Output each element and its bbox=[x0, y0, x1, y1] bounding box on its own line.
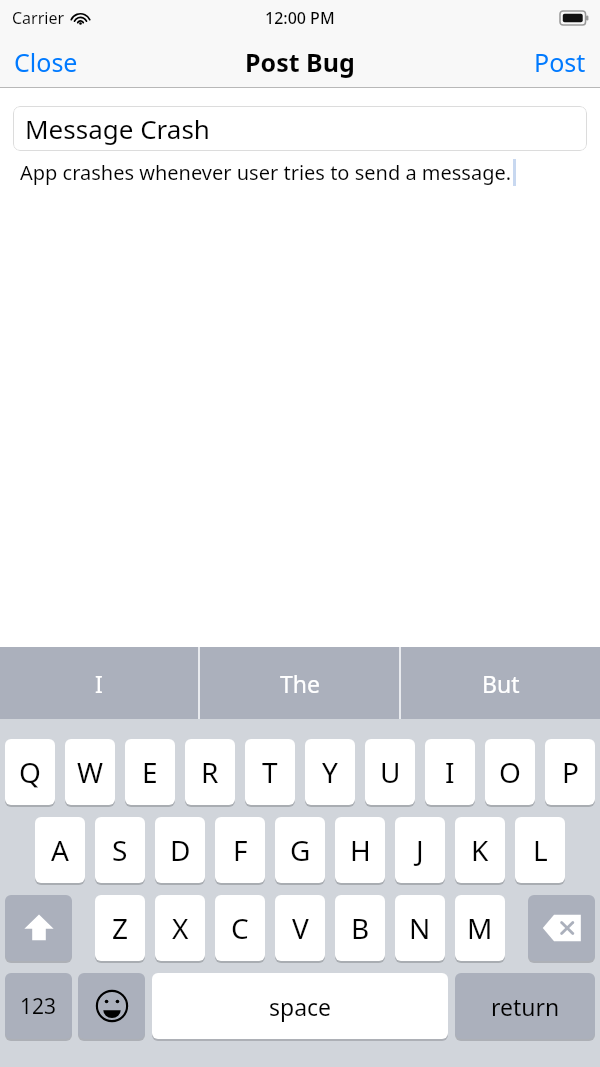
staticText: I bbox=[95, 668, 103, 699]
staticText: A bbox=[51, 831, 69, 869]
button[interactable]: O bbox=[485, 739, 535, 805]
button[interactable]: 123 bbox=[5, 973, 72, 1039]
staticText: P bbox=[562, 753, 579, 791]
button[interactable]: return bbox=[455, 973, 595, 1039]
staticText: But bbox=[482, 668, 520, 699]
button[interactable]: The bbox=[200, 647, 399, 719]
button[interactable]: F bbox=[215, 817, 265, 883]
button[interactable]: M bbox=[455, 895, 505, 961]
staticText: W bbox=[77, 753, 104, 791]
staticText: space bbox=[269, 991, 332, 1022]
button[interactable]: H bbox=[335, 817, 385, 883]
button[interactable]: C bbox=[215, 895, 265, 961]
button[interactable]: Z bbox=[95, 895, 145, 961]
button[interactable]: E bbox=[125, 739, 175, 805]
staticText: L bbox=[533, 831, 548, 869]
button[interactable]: N bbox=[395, 895, 445, 961]
button[interactable]: I bbox=[425, 739, 475, 805]
button[interactable]: App crashes whenever user tries to send … bbox=[20, 159, 600, 186]
button[interactable]: K bbox=[455, 817, 505, 883]
button[interactable]: Message Crash bbox=[13, 106, 587, 151]
staticText: H bbox=[350, 831, 371, 869]
button[interactable]: space bbox=[152, 973, 448, 1039]
button[interactable]: But bbox=[401, 647, 600, 719]
button[interactable]: Backspace bbox=[528, 895, 595, 961]
staticText: T bbox=[262, 753, 278, 791]
button[interactable]: J bbox=[395, 817, 445, 883]
staticText: F bbox=[233, 831, 248, 869]
staticText: D bbox=[170, 831, 191, 869]
button[interactable]: D bbox=[155, 817, 205, 883]
staticText: Q bbox=[19, 753, 41, 791]
staticText: O bbox=[499, 753, 521, 791]
staticText: G bbox=[290, 831, 311, 869]
staticText: K bbox=[471, 831, 489, 869]
staticText: Message Crash bbox=[25, 111, 210, 146]
staticText: App crashes whenever user tries to send … bbox=[20, 159, 512, 186]
staticText: X bbox=[172, 909, 189, 947]
button[interactable]: G bbox=[275, 817, 325, 883]
staticText: N bbox=[409, 909, 431, 947]
button[interactable]: Emoji bbox=[78, 973, 145, 1039]
button[interactable]: S bbox=[95, 817, 145, 883]
staticText: The bbox=[280, 668, 320, 699]
button[interactable]: V bbox=[275, 895, 325, 961]
button[interactable]: Post bbox=[520, 37, 600, 87]
staticText: I bbox=[445, 753, 455, 791]
staticText: V bbox=[292, 909, 309, 947]
button[interactable]: A bbox=[35, 817, 85, 883]
staticText: R bbox=[201, 753, 219, 791]
staticText: Post Bug bbox=[245, 45, 355, 79]
button[interactable]: X bbox=[155, 895, 205, 961]
staticText: Close bbox=[14, 45, 78, 79]
button[interactable]: R bbox=[185, 739, 235, 805]
staticText: Y bbox=[322, 753, 338, 791]
staticText: Carrier bbox=[12, 7, 65, 29]
staticText: Z bbox=[112, 909, 129, 947]
button[interactable]: Shift bbox=[5, 895, 72, 961]
button[interactable]: Close bbox=[0, 37, 92, 87]
staticText: U bbox=[380, 753, 401, 791]
staticText: 123 bbox=[20, 992, 57, 1021]
staticText: E bbox=[142, 753, 158, 791]
button[interactable]: P bbox=[545, 739, 595, 805]
staticText: S bbox=[112, 831, 128, 869]
button[interactable]: Q bbox=[5, 739, 55, 805]
button[interactable]: W bbox=[65, 739, 115, 805]
staticText: J bbox=[416, 831, 424, 869]
button[interactable]: B bbox=[335, 895, 385, 961]
button[interactable]: Y bbox=[305, 739, 355, 805]
button[interactable]: T bbox=[245, 739, 295, 805]
button[interactable]: L bbox=[515, 817, 565, 883]
staticText: Post bbox=[534, 45, 586, 79]
staticText: B bbox=[351, 909, 370, 947]
button[interactable]: I bbox=[0, 647, 198, 719]
button[interactable]: U bbox=[365, 739, 415, 805]
staticText: 12:00 PM bbox=[265, 7, 335, 29]
staticText: C bbox=[231, 909, 249, 947]
staticText: M bbox=[467, 909, 493, 947]
staticText: return bbox=[491, 991, 560, 1022]
